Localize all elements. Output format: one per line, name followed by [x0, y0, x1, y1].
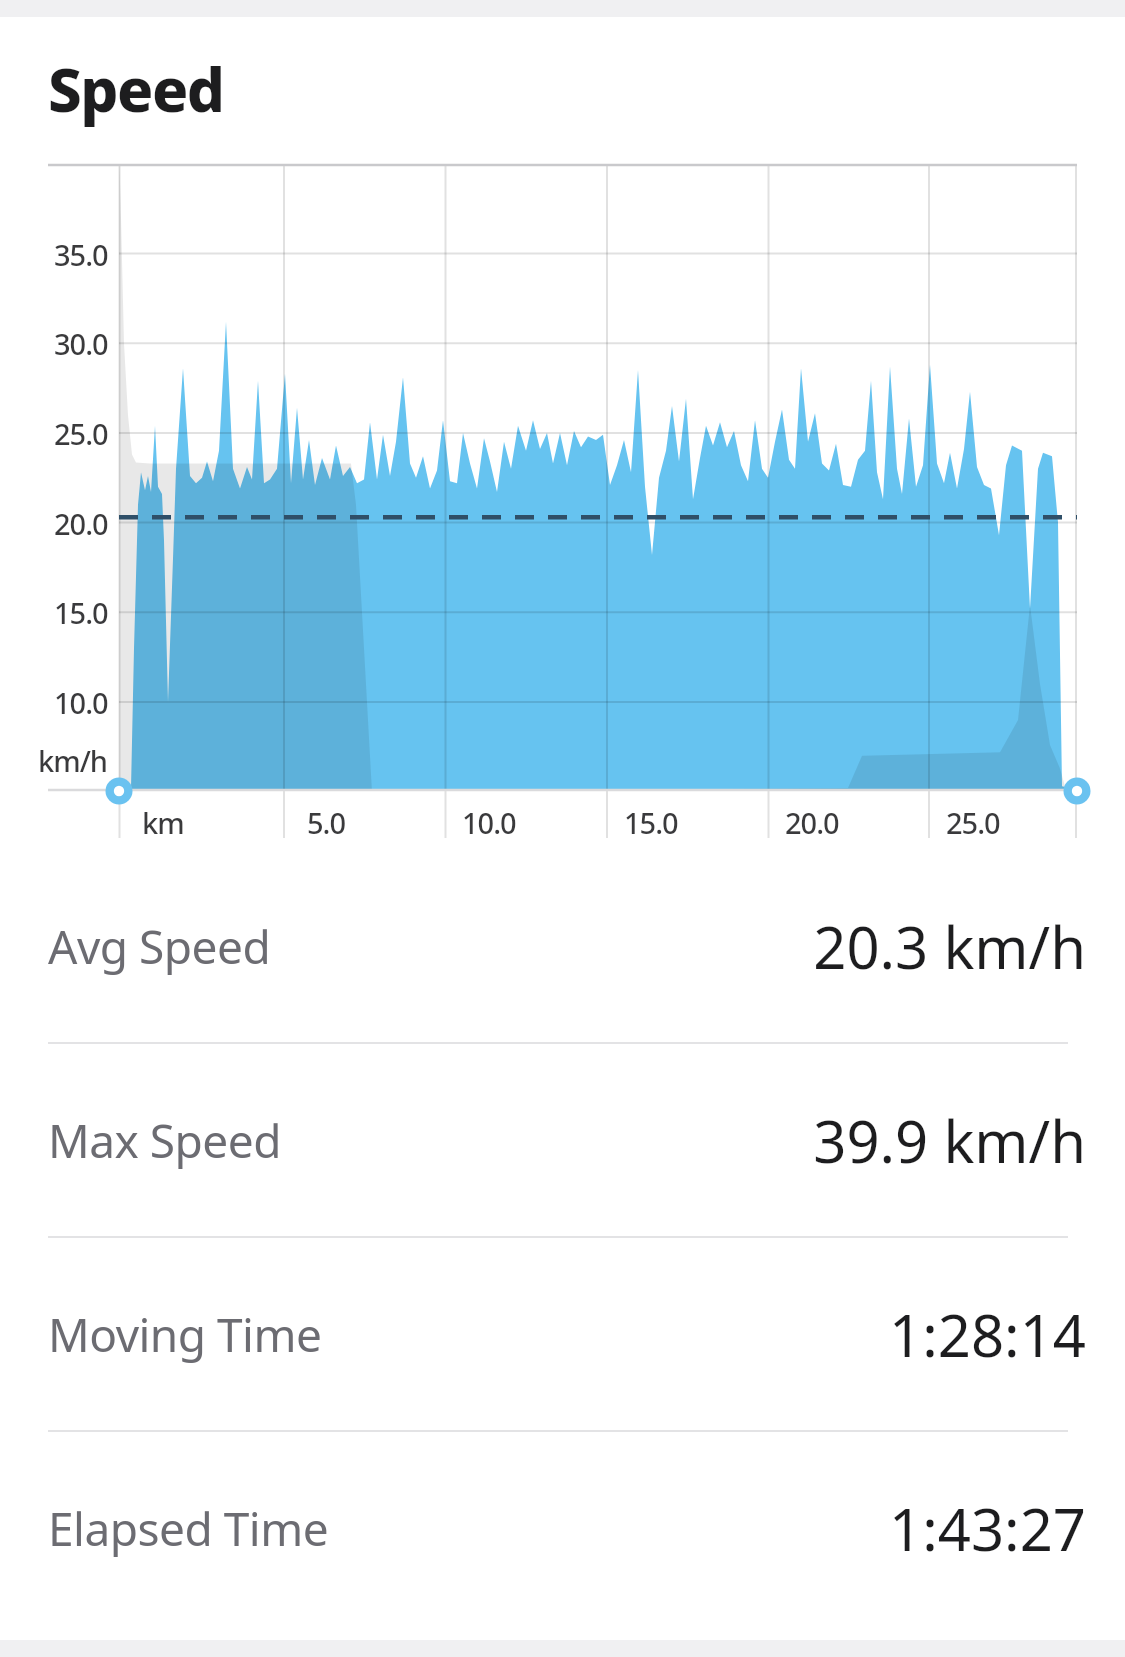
staticText: Avg Speed — [48, 915, 271, 978]
staticText: Speed — [48, 48, 224, 130]
button[interactable]: Moving Time — [0, 1237, 1125, 1431]
staticText: 30.0 — [54, 324, 108, 363]
staticText: 15.0 — [54, 593, 108, 632]
staticText: 5.0 — [307, 803, 346, 842]
staticText: 20.3 km/h — [813, 907, 1086, 986]
staticText: 15.0 — [624, 803, 678, 842]
staticText: 25.0 — [946, 803, 1000, 842]
staticText: 35.0 — [54, 235, 108, 274]
staticText: Moving Time — [48, 1303, 322, 1366]
button[interactable]: Elapsed Time — [0, 1431, 1125, 1625]
staticText: 1:43:27 — [889, 1489, 1086, 1568]
staticText: 1:28:14 — [889, 1295, 1086, 1374]
staticText: 25.0 — [54, 414, 108, 453]
button[interactable]: Max Speed — [0, 1043, 1125, 1237]
staticText: Elapsed Time — [48, 1497, 329, 1560]
staticText: Max Speed — [48, 1109, 282, 1172]
staticText: 10.0 — [54, 683, 108, 722]
staticText: km — [142, 803, 184, 842]
button[interactable]: Avg Speed — [0, 849, 1125, 1043]
staticText: 10.0 — [462, 803, 516, 842]
staticText: km/h — [38, 741, 108, 780]
staticText: 39.9 km/h — [813, 1101, 1086, 1180]
staticText: 20.0 — [54, 504, 108, 543]
staticText: 20.0 — [785, 803, 839, 842]
